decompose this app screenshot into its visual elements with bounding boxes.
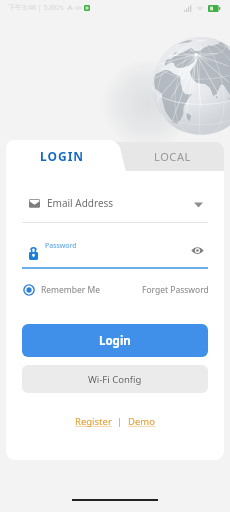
button[interactable]: Login bbox=[22, 324, 208, 357]
staticText: Register bbox=[75, 415, 112, 428]
button[interactable]: Show saved emails bbox=[192, 197, 204, 209]
button[interactable]: Remember Me bbox=[23, 284, 101, 296]
button[interactable]: Demo bbox=[128, 415, 155, 428]
staticText: Forget Password bbox=[142, 284, 209, 296]
staticText: Wi-Fi Config bbox=[88, 373, 142, 386]
button[interactable]: Register bbox=[75, 415, 112, 428]
button[interactable]: Password bbox=[22, 238, 208, 262]
staticText: | bbox=[112, 415, 128, 428]
staticText: Password bbox=[45, 241, 77, 251]
staticText: 下午3:46 | 5.8K/s bbox=[8, 3, 64, 13]
staticText: LOGIN bbox=[40, 148, 85, 164]
button[interactable]: Email Address bbox=[22, 192, 208, 214]
staticText: Login bbox=[99, 333, 131, 349]
staticText: Email Address bbox=[47, 196, 114, 210]
staticText: Demo bbox=[128, 415, 155, 428]
staticText: Remember Me bbox=[41, 284, 101, 296]
button[interactable]: Wi-Fi Config bbox=[22, 365, 208, 393]
button[interactable]: Forget Password bbox=[142, 284, 209, 296]
button[interactable]: LOCAL bbox=[117, 140, 224, 172]
button[interactable]: Show password bbox=[189, 242, 205, 258]
staticText: LOCAL bbox=[154, 149, 191, 164]
button[interactable]: LOGIN bbox=[6, 140, 117, 172]
